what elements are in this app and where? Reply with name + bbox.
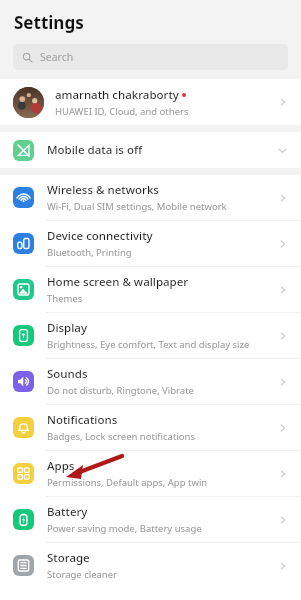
staticText: amarnath chakraborty (55, 87, 179, 103)
staticText: Sounds (47, 366, 88, 382)
button[interactable]: Notifications (0, 405, 301, 450)
staticText: Storage cleaner (47, 568, 117, 581)
staticText: Bluetooth, Printing (47, 246, 132, 259)
button[interactable]: Device connectivity (0, 221, 301, 266)
button[interactable]: Mobile data is off (0, 132, 301, 168)
staticText: Wi-Fi, Dual SIM settings, Mobile network (47, 200, 227, 213)
staticText: HUAWEI ID, Cloud, and others (55, 105, 189, 118)
button[interactable]: Sounds (0, 359, 301, 404)
button[interactable]: Display (0, 313, 301, 358)
button[interactable]: Battery (0, 497, 301, 542)
staticText: Permissions, Default apps, App twin (47, 476, 208, 489)
staticText: Wireless & networks (47, 182, 159, 198)
staticText: Search (40, 50, 74, 64)
button[interactable]: Home screen & wallpaper (0, 267, 301, 312)
staticText: Settings (14, 11, 84, 34)
staticText: Power saving mode, Battery usage (47, 522, 202, 535)
button[interactable]: Wireless & networks (0, 175, 301, 220)
staticText: Home screen & wallpaper (47, 274, 189, 290)
staticText: Storage (47, 550, 90, 566)
staticText: Device connectivity (47, 228, 153, 244)
staticText: Mobile data is off (47, 142, 277, 158)
button[interactable]: Search (13, 44, 288, 70)
staticText: Do not disturb, Ringtone, Vibrate (47, 384, 194, 397)
staticText: Badges, Lock screen notifications (47, 430, 196, 443)
staticText: Themes (47, 292, 83, 305)
button[interactable]: amarnath chakraborty (0, 79, 301, 125)
button[interactable]: Storage (0, 543, 301, 588)
staticText: Battery (47, 504, 88, 520)
button[interactable]: Apps (0, 451, 301, 496)
staticText: Apps (47, 458, 75, 474)
staticText: Display (47, 320, 87, 336)
staticText: Notifications (47, 412, 118, 428)
staticText: Brightness, Eye comfort, Text and displa… (47, 338, 250, 351)
